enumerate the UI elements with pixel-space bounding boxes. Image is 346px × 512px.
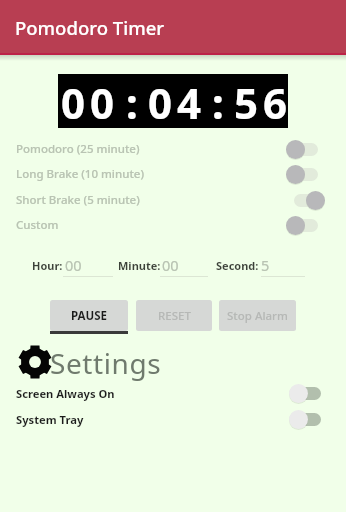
button[interactable]: Custom bbox=[0, 212, 346, 238]
staticText: 5 bbox=[261, 255, 270, 275]
button[interactable]: Screen Always On bbox=[0, 380, 346, 406]
staticText: Pomodoro Timer bbox=[15, 15, 165, 40]
staticText: Custom bbox=[16, 217, 59, 233]
staticText: Short Brake (5 minute) bbox=[16, 192, 140, 208]
staticText: Minute: bbox=[118, 258, 161, 273]
staticText: RESET bbox=[158, 308, 191, 324]
staticText: 0 bbox=[90, 74, 115, 128]
staticText: 0 bbox=[148, 74, 173, 128]
staticText: 4 bbox=[177, 74, 202, 128]
staticText: Settings bbox=[50, 344, 162, 382]
staticText: Screen Always On bbox=[16, 386, 115, 401]
button[interactable]: System Tray bbox=[0, 406, 346, 432]
staticText: 6 bbox=[263, 74, 288, 128]
staticText: System Tray bbox=[16, 412, 84, 427]
button[interactable]: Short Brake (5 minute) bbox=[0, 187, 346, 213]
button[interactable]: Long Brake (10 minute) bbox=[0, 161, 346, 187]
staticText: Long Brake (10 minute) bbox=[16, 166, 144, 182]
staticText: 00 bbox=[162, 255, 179, 275]
button[interactable]: PAUSE bbox=[50, 300, 128, 331]
staticText: Stop Alarm bbox=[227, 308, 288, 324]
staticText: : bbox=[126, 74, 138, 128]
staticText: 00 bbox=[65, 255, 82, 275]
button[interactable]: Stop Alarm bbox=[219, 300, 296, 331]
staticText: 5 bbox=[234, 74, 259, 128]
staticText: Second: bbox=[216, 258, 259, 273]
staticText: PAUSE bbox=[71, 308, 107, 324]
staticText: Hour: bbox=[32, 258, 63, 273]
staticText: : bbox=[212, 74, 224, 128]
staticText: 0 bbox=[61, 74, 86, 128]
other: Settings bbox=[18, 345, 52, 379]
button[interactable]: RESET bbox=[136, 300, 212, 331]
staticText: Pomodoro (25 minute) bbox=[16, 141, 140, 157]
button[interactable]: Pomodoro (25 minute) bbox=[0, 136, 346, 162]
